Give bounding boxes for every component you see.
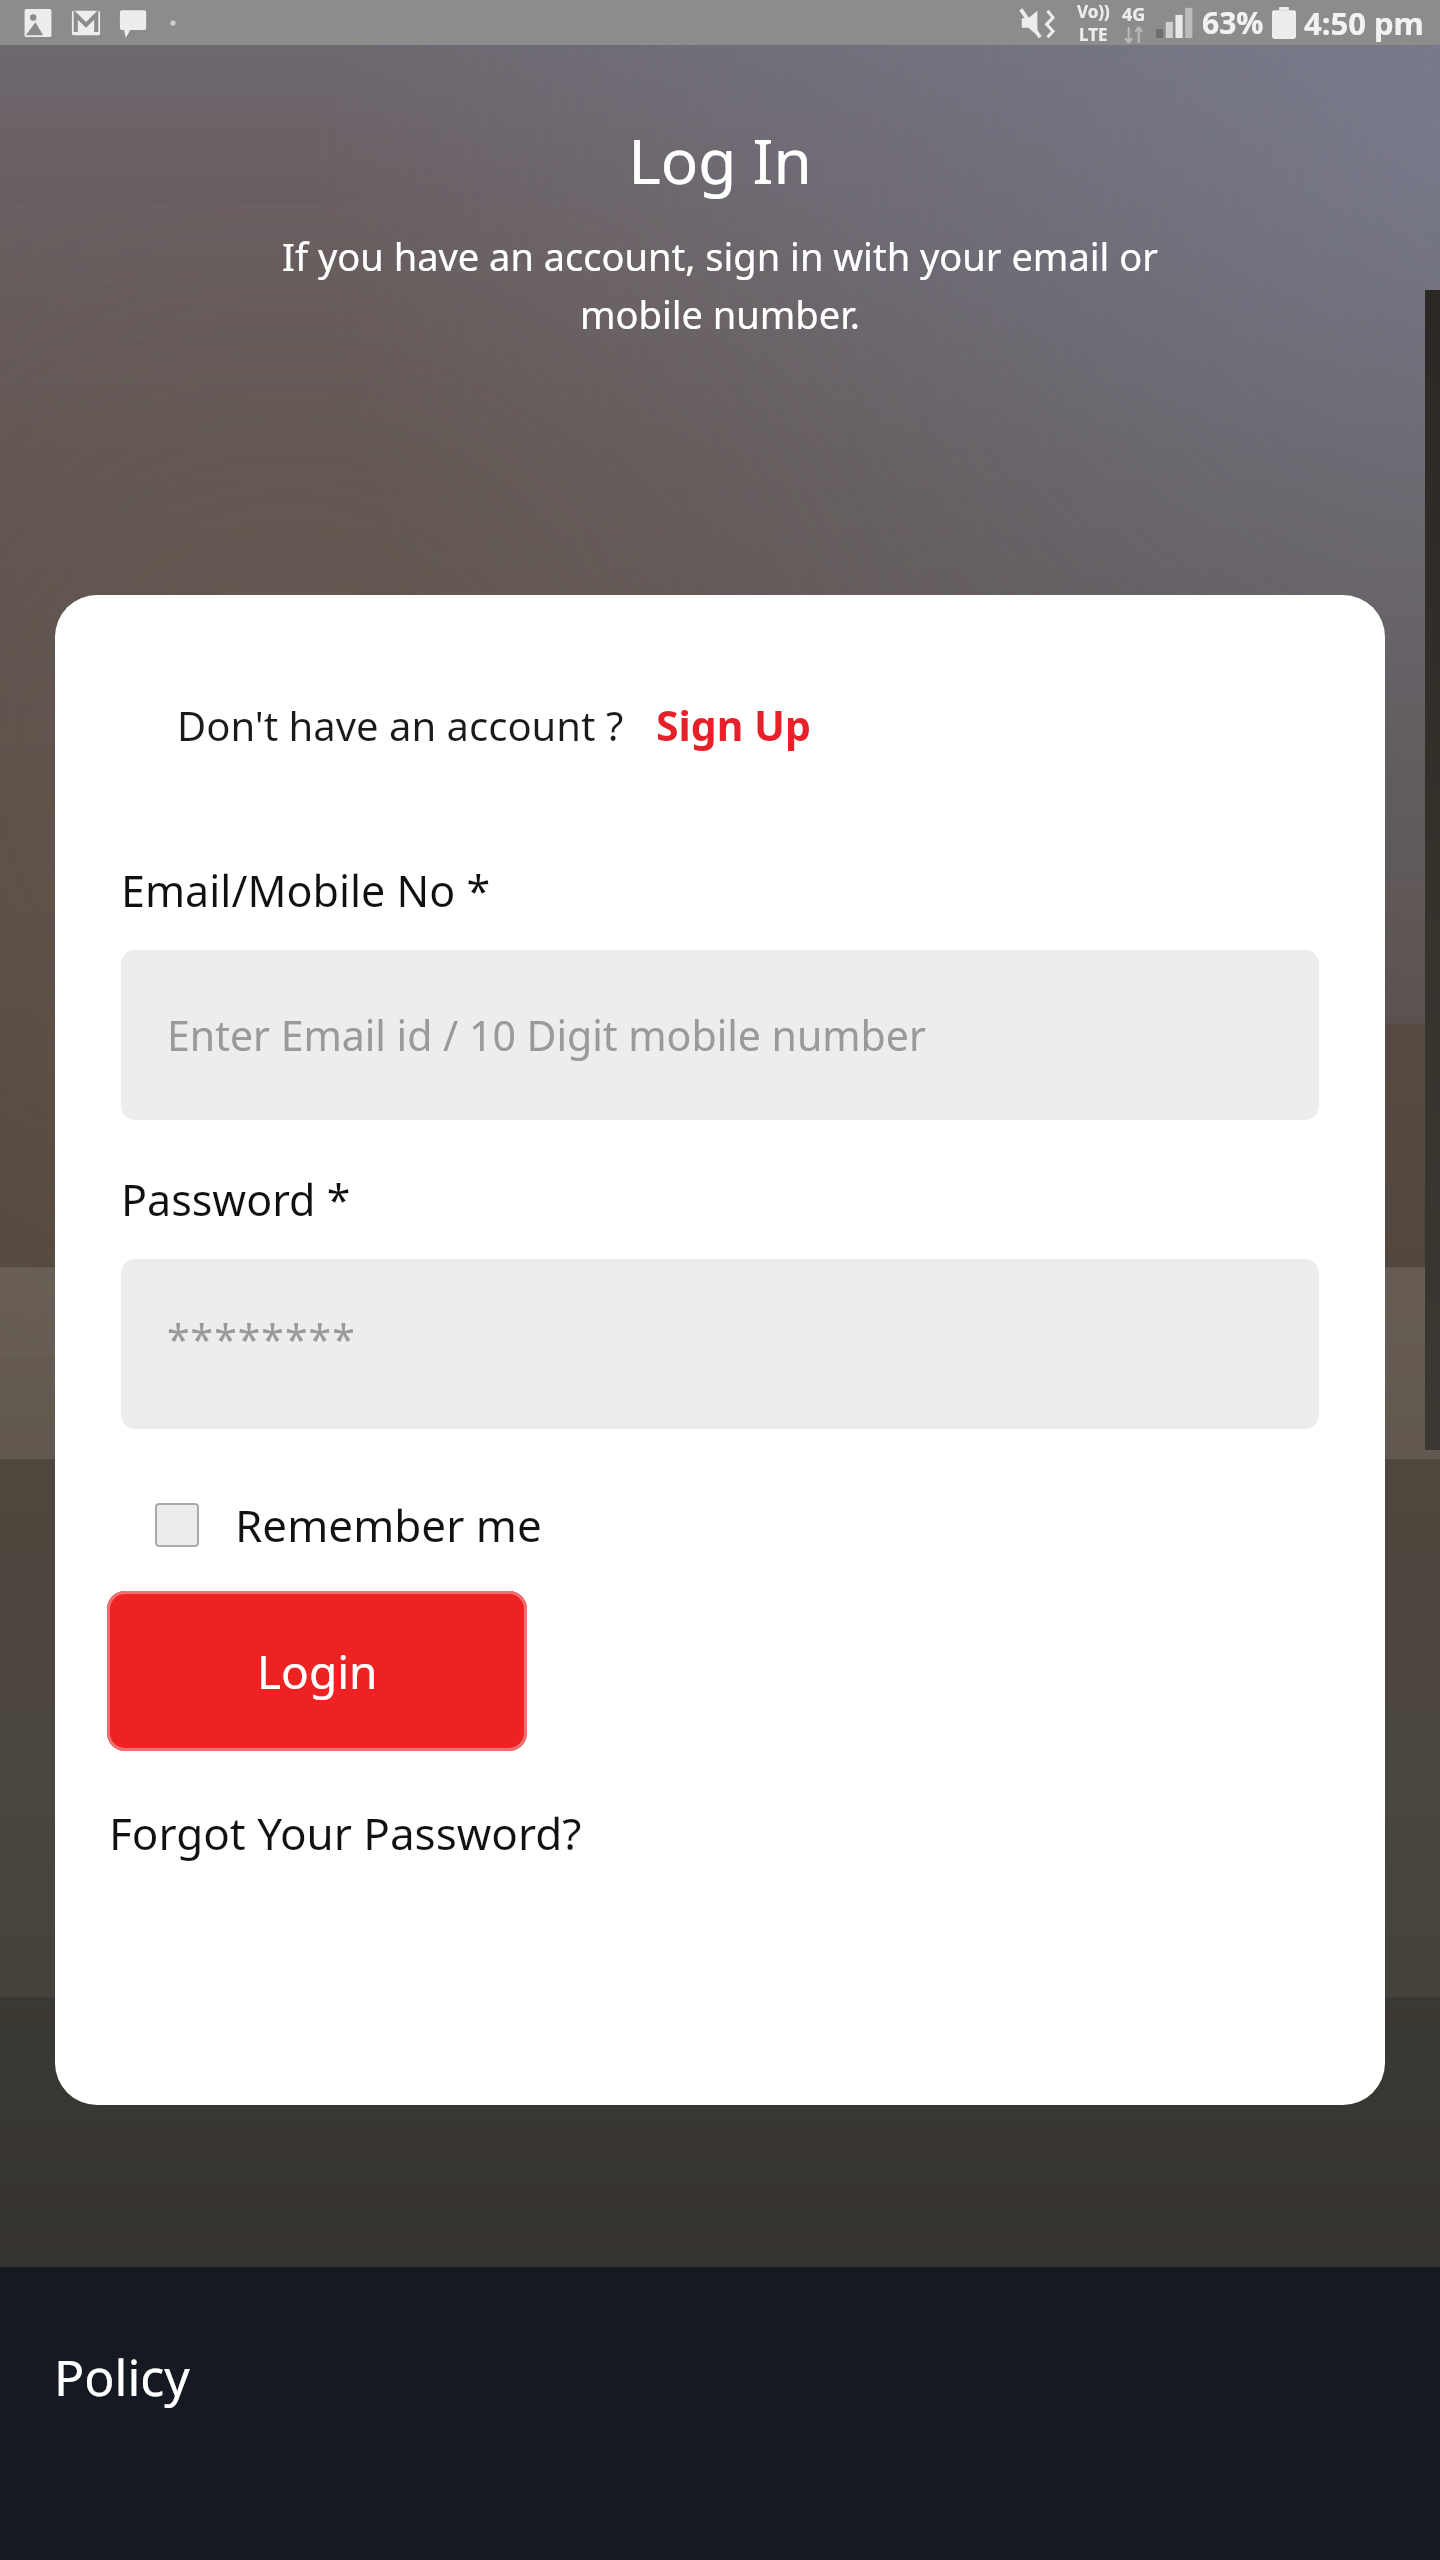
- staticText: If you have an account, sign in with you…: [130, 230, 1310, 340]
- staticText: LTE: [1079, 23, 1108, 45]
- staticText: Sign Up: [656, 697, 811, 753]
- button[interactable]: Enter Email id / 10 Digit mobile number: [121, 950, 1319, 1120]
- staticText: 4:50 pm: [1304, 2, 1424, 44]
- staticText: Login: [257, 1640, 378, 1703]
- staticText: Vo)): [1077, 0, 1110, 23]
- button[interactable]: Forgot Your Password?: [109, 1803, 582, 1863]
- staticText: Enter Email id / 10 Digit mobile number: [167, 1007, 926, 1063]
- staticText: Log In: [628, 118, 812, 202]
- button[interactable]: Don't have an account ?: [177, 697, 811, 753]
- staticText: 4G: [1122, 2, 1146, 27]
- staticText: Remember me: [235, 1495, 542, 1555]
- staticText: Don't have an account ?: [177, 698, 624, 752]
- button[interactable]: Login: [107, 1591, 527, 1751]
- staticText: 63%: [1202, 2, 1264, 43]
- staticText: Password *: [121, 1170, 351, 1229]
- button[interactable]: Policy: [54, 2343, 190, 2411]
- staticText: ********: [167, 1311, 356, 1367]
- staticText: Email/Mobile No *: [121, 861, 491, 920]
- button[interactable]: Remember me: [155, 1495, 542, 1555]
- button[interactable]: ********: [121, 1259, 1319, 1429]
